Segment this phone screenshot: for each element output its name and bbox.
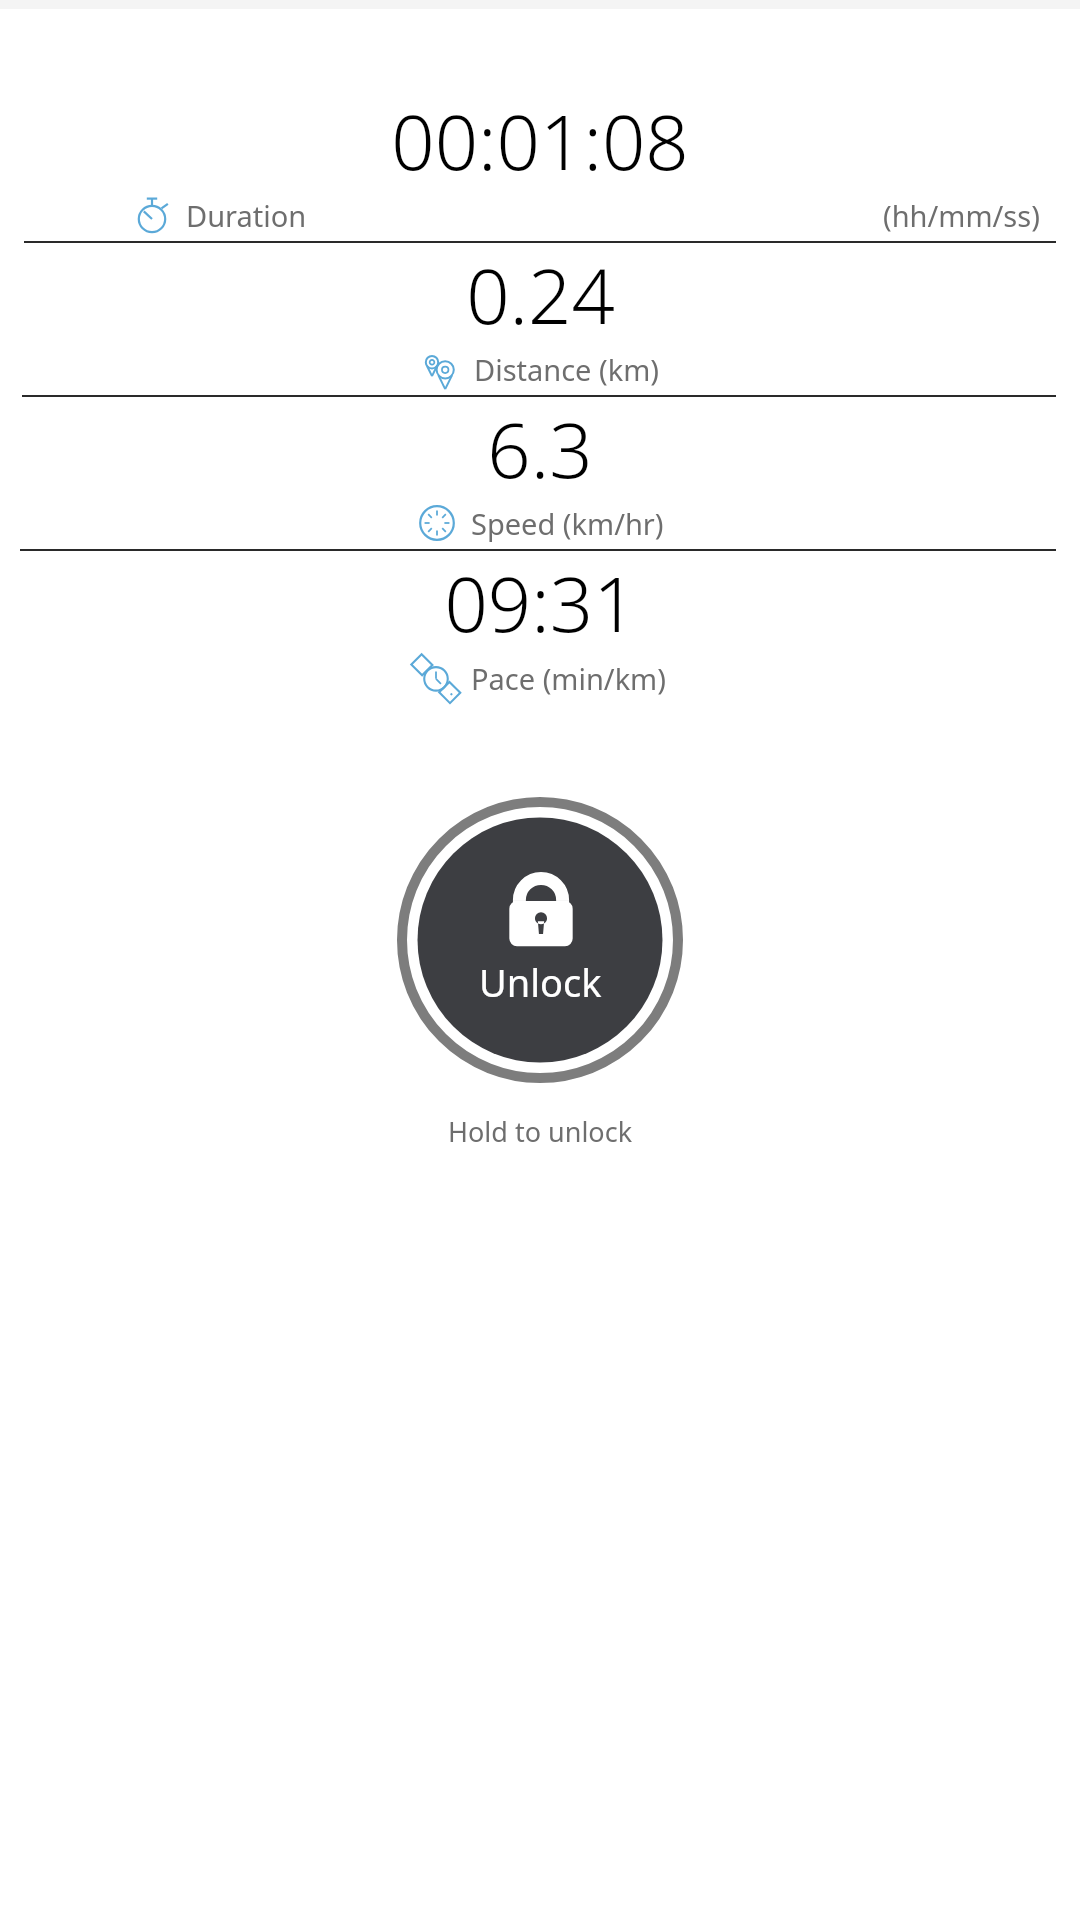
button[interactable]: 6.3 — [0, 397, 1080, 549]
staticText: 6.3 — [487, 397, 593, 501]
staticText: 0.24 — [466, 243, 615, 347]
staticText: Speed (km/hr) — [471, 504, 664, 543]
button[interactable]: 09:31 — [0, 551, 1080, 705]
staticText: Unlock — [479, 956, 602, 1008]
staticText: (hh/mm/ss) — [883, 196, 1040, 235]
button[interactable]: 00:01:08 — [0, 89, 1080, 241]
staticText: 00:01:08 — [391, 89, 689, 193]
button[interactable]: 0.24 — [0, 243, 1080, 395]
staticText: Duration — [186, 196, 307, 235]
staticText: Hold to unlock — [448, 1113, 633, 1150]
staticText: Distance (km) — [474, 350, 660, 389]
staticText: 09:31 — [444, 551, 637, 655]
staticText: Pace (min/km) — [471, 659, 666, 698]
button[interactable]: Unlock — [397, 797, 683, 1083]
